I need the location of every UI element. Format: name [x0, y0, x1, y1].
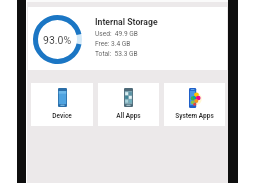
staticText: Internal Storage: [95, 17, 158, 27]
other: All Apps: [124, 88, 133, 107]
button[interactable]: All Apps: [98, 83, 159, 126]
button[interactable]: Device: [31, 83, 93, 126]
staticText: 93.0%: [43, 34, 72, 46]
staticText: Used: 49.9 GB: [95, 30, 138, 38]
staticText: System Apps: [175, 112, 214, 120]
button[interactable]: System Apps: [164, 83, 225, 126]
button[interactable]: 93.0%: [28, 7, 227, 70]
staticText: Device: [52, 112, 72, 120]
staticText: Free: 3.4 GB: [95, 40, 131, 48]
staticText: Total: 53.3 GB: [95, 50, 138, 58]
other: Device: [58, 88, 67, 107]
other: System Apps: [189, 88, 201, 108]
staticText: All Apps: [116, 112, 141, 120]
